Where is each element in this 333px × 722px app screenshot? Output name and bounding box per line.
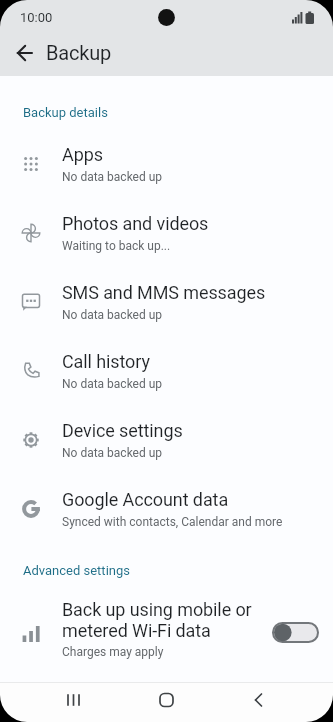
button[interactable]: Back up using mobile or metered Wi-Fi da… — [0, 589, 333, 669]
staticText: Google Account data — [62, 489, 229, 510]
staticText: Waiting to back up... — [62, 239, 171, 253]
button[interactable] — [10, 38, 46, 70]
staticText: Charges may apply — [62, 645, 164, 659]
button[interactable] — [111, 682, 222, 722]
staticText: No data backed up — [62, 308, 163, 322]
button[interactable]: Photos and videos — [0, 198, 333, 267]
staticText: Synced with contacts, Calendar and more — [62, 515, 283, 529]
button[interactable] — [272, 622, 319, 643]
staticText: Back up using mobile or metered Wi-Fi da… — [62, 599, 252, 641]
staticText: No data backed up — [62, 446, 163, 460]
staticText: Backup — [46, 41, 112, 64]
staticText: Apps — [62, 144, 103, 165]
button[interactable] — [0, 682, 111, 722]
staticText: Device settings — [62, 420, 183, 441]
staticText: Call history — [62, 351, 150, 372]
staticText: SMS and MMS messages — [62, 282, 266, 303]
staticText: 10:00 — [20, 10, 53, 25]
button[interactable]: Device settings — [0, 405, 333, 474]
button[interactable]: Call history — [0, 336, 333, 405]
button[interactable]: Apps — [0, 129, 333, 198]
staticText: No data backed up — [62, 377, 163, 391]
staticText: Advanced settings — [23, 563, 130, 578]
staticText: No data backed up — [62, 170, 163, 184]
button[interactable]: Google Account data — [0, 474, 333, 543]
button[interactable]: SMS and MMS messages — [0, 267, 333, 336]
staticText: Backup details — [23, 105, 108, 120]
staticText: Photos and videos — [62, 213, 209, 234]
button[interactable] — [222, 682, 333, 722]
